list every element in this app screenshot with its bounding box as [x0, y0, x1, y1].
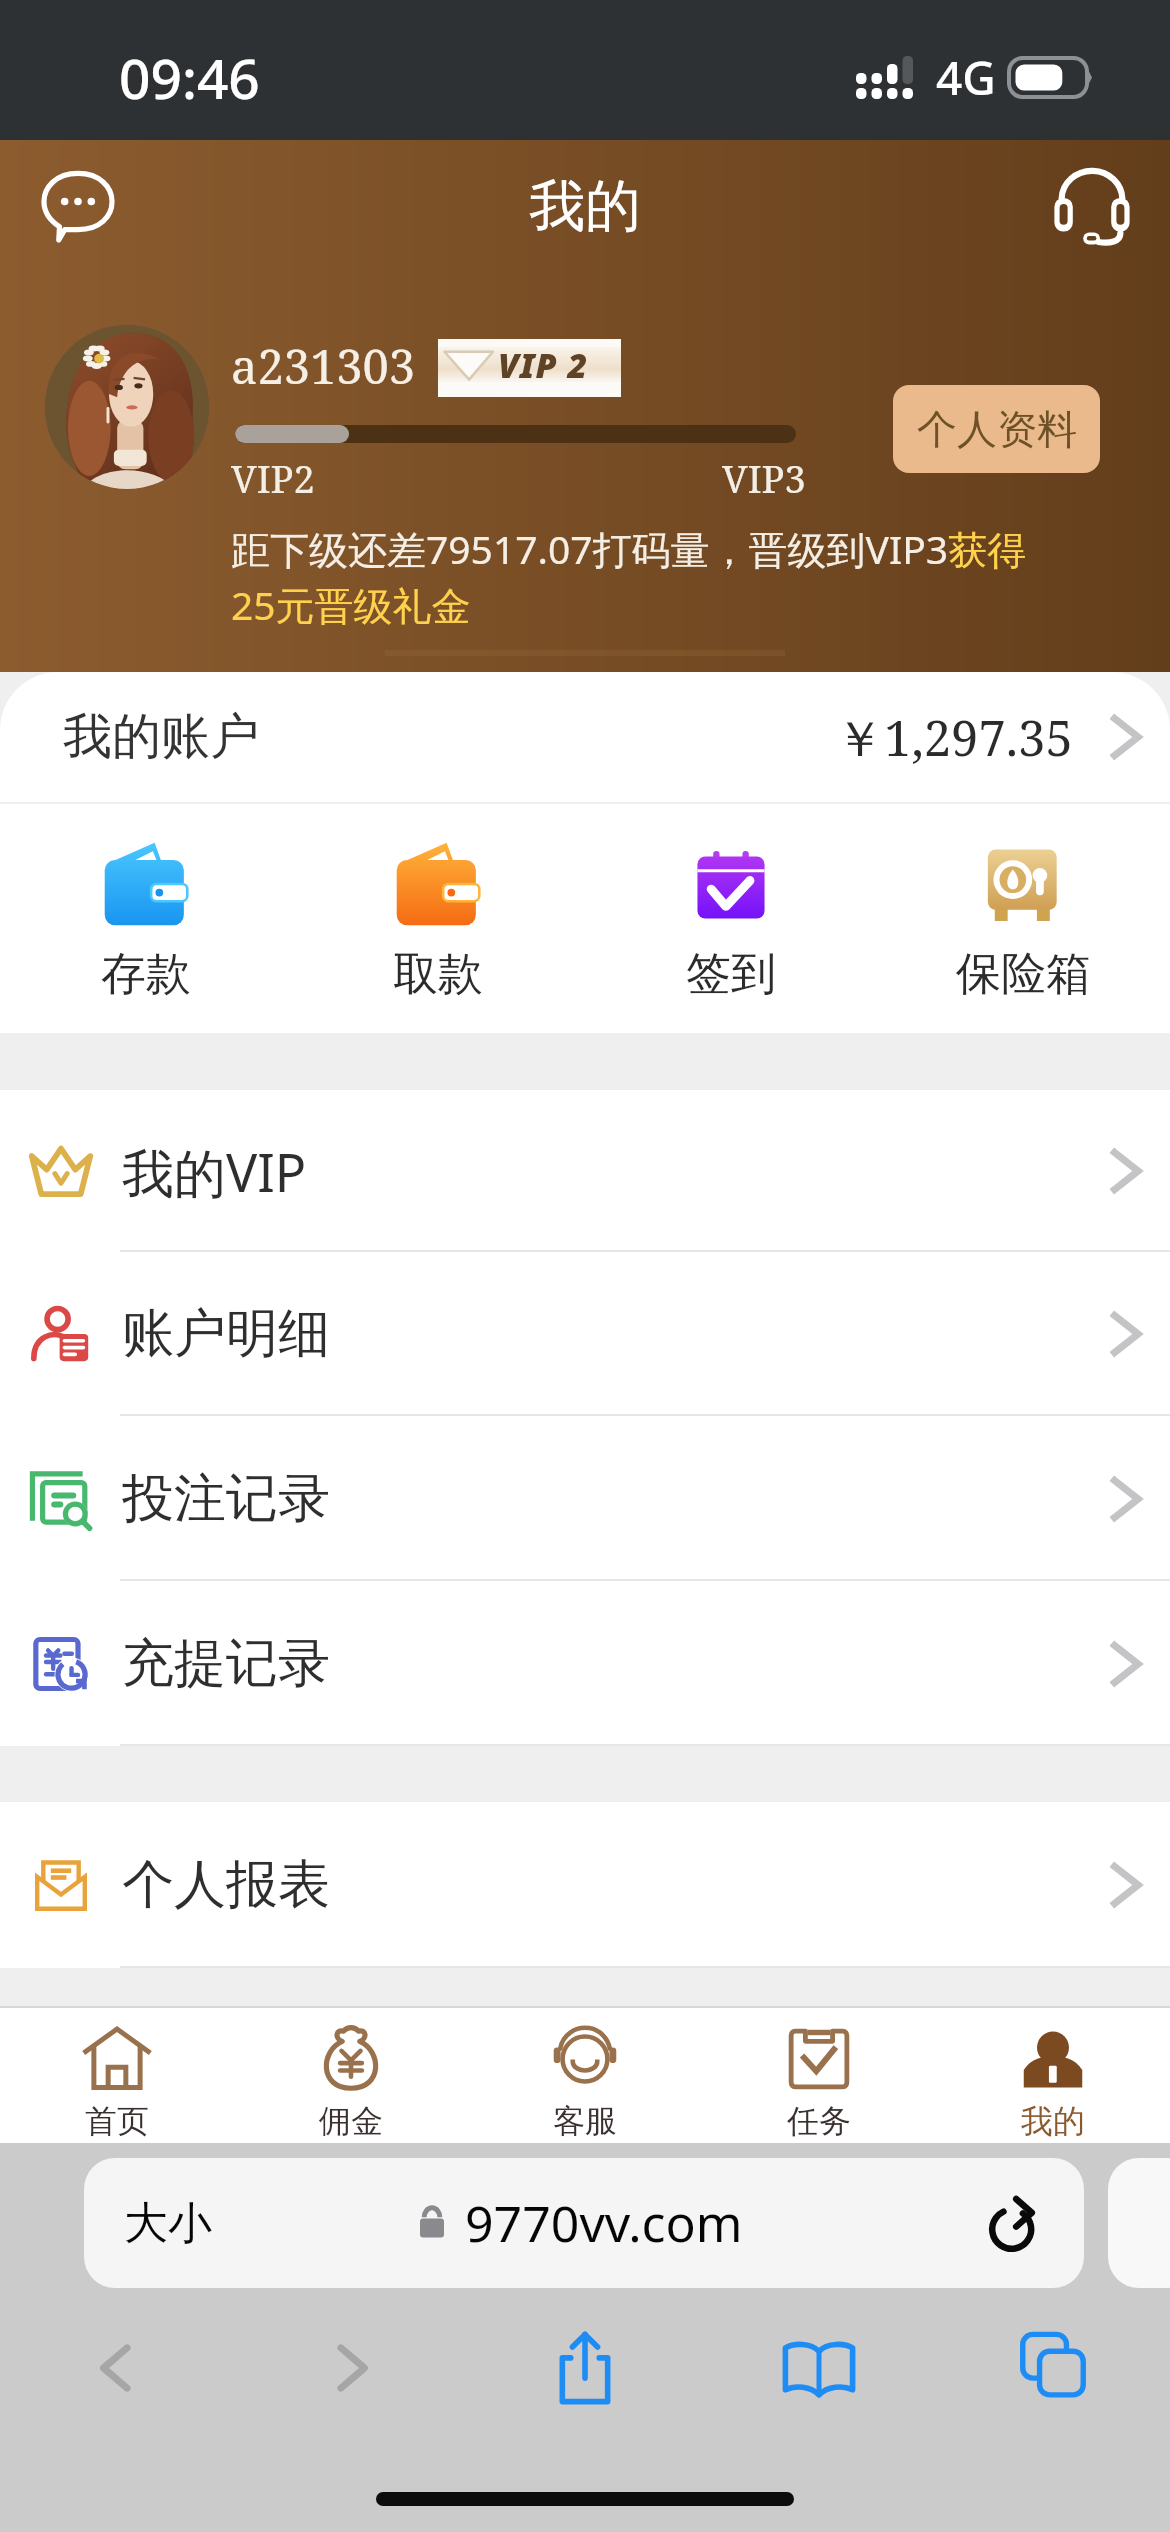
staticText: 任务: [787, 2101, 851, 2141]
button[interactable]: 个人资料: [893, 385, 1100, 473]
staticText: 个人报表: [122, 1852, 330, 1918]
staticText: 账户明细: [122, 1301, 330, 1367]
button[interactable]: 任务: [702, 2008, 936, 2143]
button[interactable]: Tabs: [936, 2308, 1170, 2428]
button[interactable]: 佣金: [234, 2008, 468, 2143]
button[interactable]: 个人报表: [0, 1802, 1170, 1968]
staticText: VIP 2: [498, 342, 589, 388]
staticText: 佣金: [319, 2101, 383, 2141]
staticText: 个人资料: [917, 404, 1077, 454]
button[interactable]: Forward: [234, 2308, 468, 2428]
button[interactable]: 我的: [936, 2008, 1170, 2143]
staticText: 取款: [393, 946, 483, 1003]
staticText: ￥1,297.35: [835, 704, 1073, 771]
staticText: 9770vv.com: [465, 2189, 743, 2257]
staticText: 投注记录: [122, 1466, 330, 1532]
button[interactable]: 大小: [84, 2158, 1084, 2288]
staticText: 保险箱: [956, 946, 1091, 1003]
button[interactable]: 我的VIP: [0, 1090, 1170, 1252]
staticText: a231303: [231, 334, 416, 398]
staticText: 我的: [1021, 2101, 1085, 2141]
button[interactable]: 签到: [584, 804, 877, 1033]
staticText: 25元晋级礼金: [231, 578, 471, 631]
staticText: 充提记录: [122, 1631, 330, 1697]
staticText: 4G: [936, 46, 996, 109]
button[interactable]: 客服: [468, 2008, 702, 2143]
staticText: 距下级还差79517.07打码量，晋级到VIP3获得: [231, 522, 1027, 575]
button[interactable]: 账户明细: [0, 1252, 1170, 1416]
button[interactable]: VIP 2: [438, 339, 621, 397]
button[interactable]: [45, 325, 209, 489]
staticText: 大小: [124, 2196, 212, 2251]
button[interactable]: Bookmarks: [702, 2308, 936, 2428]
button[interactable]: Back: [0, 2308, 234, 2428]
button[interactable]: 保险箱: [877, 804, 1170, 1033]
staticText: 我的账户: [63, 706, 259, 768]
button[interactable]: Reload: [982, 2190, 1048, 2256]
button[interactable]: Messages: [28, 156, 128, 256]
staticText: 我的: [529, 171, 641, 242]
button[interactable]: Share: [468, 2308, 702, 2428]
button[interactable]: 首页: [0, 2008, 234, 2143]
button[interactable]: 我的账户: [0, 672, 1170, 802]
staticText: 我的VIP: [122, 1136, 307, 1207]
staticText: VIP2: [231, 452, 315, 504]
staticText: 09:46: [119, 40, 260, 115]
staticText: 客服: [553, 2101, 617, 2141]
button[interactable]: 投注记录: [0, 1416, 1170, 1581]
staticText: 存款: [101, 946, 191, 1003]
staticText: 签到: [686, 946, 776, 1003]
button[interactable]: Customer service: [1042, 156, 1142, 256]
staticText: 首页: [85, 2101, 149, 2141]
staticText: VIP3: [722, 452, 806, 504]
button[interactable]: 充提记录: [0, 1581, 1170, 1746]
button[interactable]: 取款: [292, 804, 584, 1033]
button[interactable]: 存款: [0, 804, 292, 1033]
